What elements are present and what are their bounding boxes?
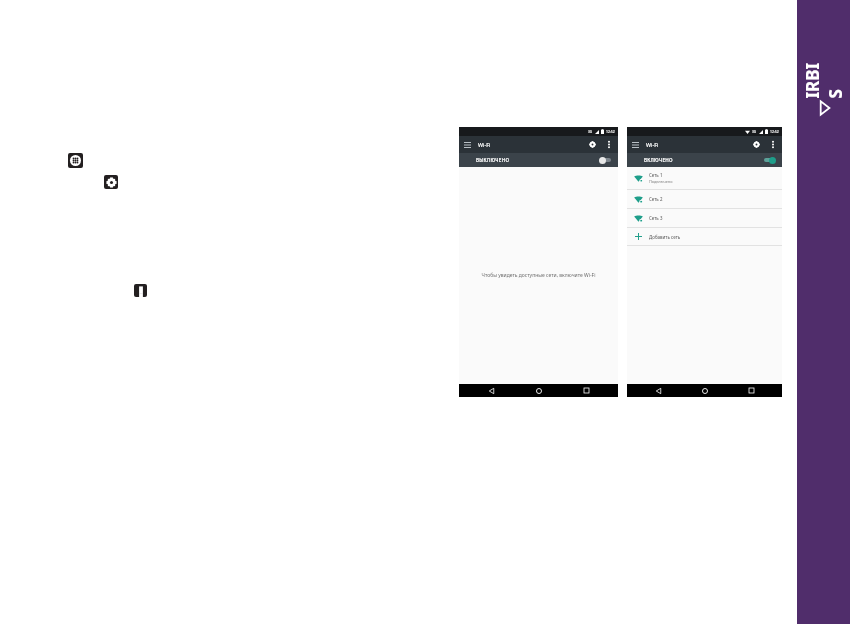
button[interactable]: Home (524, 384, 554, 397)
button[interactable]: Recent apps (571, 384, 601, 397)
button[interactable]: Advanced settings (748, 136, 765, 153)
button[interactable]: More options (134, 284, 147, 297)
staticText: 3G (588, 130, 593, 134)
staticText: ВКЛЮЧЕНО (644, 157, 673, 163)
button[interactable]: Сеть 3 (627, 209, 782, 228)
button[interactable]: Settings (104, 175, 118, 189)
staticText: IRBIS (800, 62, 846, 98)
button[interactable]: Navigation menu (627, 136, 644, 153)
staticText: 3G (752, 130, 757, 134)
button[interactable]: Advanced settings (584, 136, 601, 153)
button[interactable]: Сеть 2 (627, 190, 782, 209)
staticText: 12:52 (770, 129, 779, 134)
button[interactable]: Back (643, 384, 673, 397)
staticText: Wi-Fi (646, 141, 659, 148)
staticText: ВЫКЛЮЧЕНО (476, 157, 510, 163)
staticText: Чтобы увидеть доступные сети, включите W… (463, 272, 614, 279)
button[interactable]: More options (765, 137, 780, 152)
button[interactable]: Navigation menu (459, 136, 476, 153)
staticText: 12:52 (606, 129, 615, 134)
button[interactable]: Recent apps (736, 384, 766, 397)
button[interactable]: All apps (68, 153, 83, 168)
button[interactable]: Back (476, 384, 506, 397)
staticText: Сеть 3 (649, 215, 663, 221)
staticText: Подключено (649, 179, 673, 184)
button[interactable]: ВКЛЮЧЕНО (627, 153, 782, 167)
staticText: Сеть 1 (649, 172, 663, 178)
button[interactable]: ВЫКЛЮЧЕНО (459, 153, 618, 167)
button[interactable]: Добавить сеть (627, 228, 782, 246)
staticText: Добавить сеть (649, 234, 681, 240)
button[interactable]: More options (601, 137, 616, 152)
staticText: Сеть 2 (649, 196, 663, 202)
button[interactable]: Сеть 1 (627, 167, 782, 190)
staticText: Wi-Fi (478, 141, 491, 148)
button[interactable]: Home (690, 384, 720, 397)
